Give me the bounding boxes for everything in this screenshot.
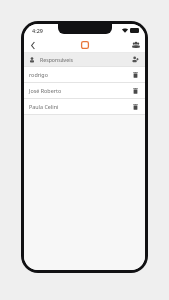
button[interactable]: Delete rodrigo — [131, 70, 140, 79]
staticText: Responsáveis — [40, 56, 73, 63]
staticText: José Roberto — [29, 87, 62, 94]
staticText: Paula Celini — [29, 103, 59, 110]
button[interactable]: Members — [130, 39, 142, 51]
button[interactable]: rodrigo — [24, 67, 145, 82]
button[interactable]: Back — [27, 39, 39, 51]
button[interactable]: Delete José Roberto — [131, 86, 140, 95]
button[interactable]: Paula Celini — [24, 99, 145, 114]
button[interactable]: Add person — [131, 55, 140, 64]
staticText: 4:29 — [32, 27, 43, 34]
button[interactable]: Delete Paula Celini — [131, 102, 140, 111]
button[interactable]: José Roberto — [24, 83, 145, 98]
button[interactable]: Logo — [79, 39, 90, 50]
staticText: rodrigo — [29, 71, 48, 78]
button[interactable]: Responsáveis — [24, 53, 145, 66]
